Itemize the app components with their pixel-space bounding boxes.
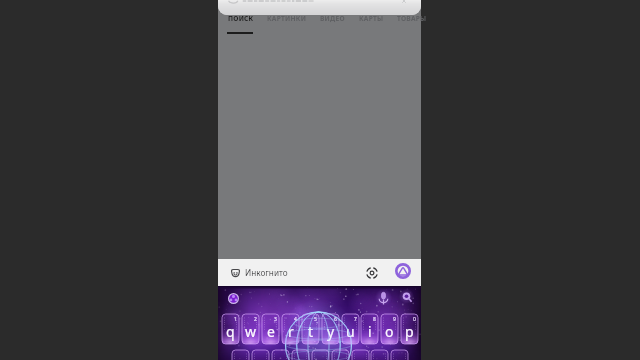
staticText: d [276,358,285,360]
button[interactable]: 8 [361,314,378,344]
staticText: 6 [334,316,337,323]
staticText: КАРТЫ [359,14,384,23]
button[interactable]: Voice input [379,292,388,305]
button[interactable]: k [371,350,388,360]
button[interactable]: 4 [282,314,299,344]
staticText: y [327,322,335,341]
button[interactable]: 1 [222,314,239,344]
button[interactable]: h [332,350,349,360]
staticText: k [376,358,384,360]
button[interactable]: Alice assistant [395,263,411,279]
button[interactable]: ТОВАРЫ [391,13,433,23]
button[interactable]: Инкогнито [231,267,288,278]
staticText: 7 [354,316,357,323]
staticText: 1 [234,316,237,323]
button[interactable]: j [352,350,369,360]
button[interactable]: Инкогнито [218,259,421,286]
button[interactable]: 7 [342,314,359,344]
button[interactable]: 9 [381,314,398,344]
button[interactable]: ВИДЕО [311,13,353,23]
staticText: p [405,322,414,341]
button[interactable]: КАРТИНКИ [266,13,308,23]
button[interactable]: d [272,350,289,360]
staticText: e [267,322,275,341]
staticText: 8 [373,316,376,323]
staticText: 0 [413,316,416,323]
button[interactable]: s [252,350,269,360]
staticText: r [288,322,294,341]
staticText: ТОВАРЫ [397,14,427,23]
staticText: q [226,322,235,341]
button[interactable]: 6 [322,314,339,344]
staticText: Инкогнито [245,267,288,278]
staticText: 5 [314,316,317,323]
staticText: i [368,322,372,341]
button[interactable]: l [391,350,408,360]
button[interactable]: 2 [242,314,259,344]
button[interactable]: 3 [262,314,279,344]
staticText: ВИДЕО [320,14,345,23]
staticText: t [308,322,314,341]
button[interactable]: Search [402,292,412,302]
button[interactable]: Keyboard theme [228,293,239,304]
staticText: g [316,358,325,360]
button[interactable]: 5 [302,314,319,344]
staticText: 9 [393,316,396,323]
staticText: w [245,322,257,341]
staticText: a [237,358,245,360]
staticText: f [298,358,303,360]
staticText: u [346,322,355,341]
staticText: 4 [294,316,297,323]
button[interactable]: g [312,350,329,360]
button[interactable]: 0 [401,314,418,344]
button[interactable]: КАРТЫ [350,13,392,23]
button[interactable] [218,0,421,15]
staticText: ПОИСК [228,14,254,23]
button[interactable]: Scan with camera [365,266,378,279]
staticText: 2 [254,316,257,323]
staticText: o [385,322,394,341]
button[interactable]: ПОИСК [220,13,262,23]
button[interactable]: f [292,350,309,360]
staticText: h [336,358,345,360]
staticText: КАРТИНКИ [267,14,307,23]
button[interactable]: a [232,350,249,360]
staticText: 3 [274,316,277,323]
